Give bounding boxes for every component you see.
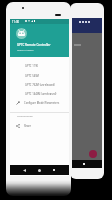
button[interactable]: Share bbox=[10, 121, 69, 130]
button[interactable]: GPTC 1443M (unreleased) bbox=[10, 89, 69, 98]
staticText: GPTC Remote Controller bbox=[17, 43, 51, 47]
staticText: Communicate bbox=[17, 114, 33, 117]
button[interactable]: Configure Model Parameters bbox=[10, 98, 69, 107]
other: Back bbox=[23, 169, 26, 172]
staticText: GPTC 545M bbox=[25, 74, 39, 78]
staticText: GPTC 1443M (unreleased) bbox=[25, 92, 57, 96]
button[interactable]: GPTC 762M (unreleased) bbox=[10, 80, 69, 89]
staticText: 11:00 bbox=[12, 20, 20, 24]
staticText: Select a Model bbox=[17, 48, 34, 51]
staticText: Configure Model Parameters bbox=[24, 101, 60, 105]
button[interactable]: GPTC 545M bbox=[10, 71, 69, 80]
staticText: Share bbox=[24, 124, 31, 128]
staticText: GPTC 762M (unreleased) bbox=[25, 83, 55, 87]
staticText: GPTC 1190 bbox=[25, 64, 39, 68]
button[interactable]: Add bbox=[89, 150, 97, 158]
button[interactable]: GPTC 1190 bbox=[10, 61, 69, 70]
other: Home bbox=[38, 169, 41, 172]
